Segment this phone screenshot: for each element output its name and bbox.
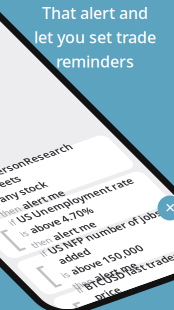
staticText: reminders [56, 51, 134, 72]
staticText: That alert and [42, 2, 148, 23]
staticText: ✕ [164, 200, 174, 215]
button[interactable]: Close [157, 195, 174, 220]
staticText: let you set trade [34, 26, 156, 48]
